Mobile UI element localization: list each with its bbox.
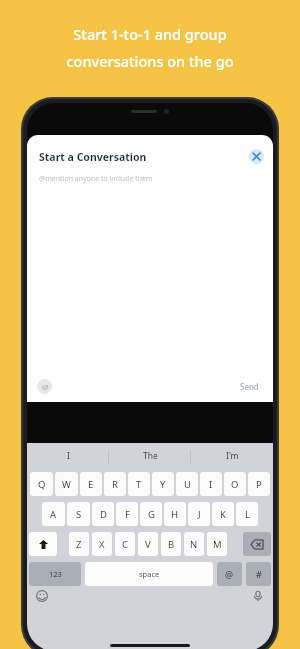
button[interactable]: T [128,472,150,496]
button[interactable]: Emoji [36,590,48,602]
button[interactable]: I [200,472,222,496]
button[interactable]: Shift [29,532,57,556]
button[interactable]: V [138,532,158,556]
staticText: T [136,478,142,491]
button[interactable]: M [207,532,227,556]
button[interactable]: Y [152,472,174,496]
button[interactable]: Q [30,472,53,496]
staticText: G [148,508,155,521]
button[interactable]: Close [249,149,264,164]
staticText: Z [76,538,82,551]
staticText: I'm [226,450,239,462]
button[interactable]: A [42,502,65,526]
button[interactable]: Send [238,379,261,394]
button[interactable]: The [109,443,191,469]
staticText: I [209,478,213,491]
button[interactable]: L [236,502,258,526]
button[interactable]: Z [69,532,89,556]
staticText: L [245,508,250,521]
button[interactable]: E [80,472,102,496]
button[interactable]: B [161,532,181,556]
button[interactable]: H [164,502,186,526]
staticText: # [256,568,262,580]
button[interactable]: I'm [191,443,273,469]
button[interactable]: K [212,502,234,526]
staticText: space [139,569,160,579]
button[interactable]: O [224,472,246,496]
button[interactable]: I [27,443,109,469]
button[interactable]: G [140,502,162,526]
staticText: W [62,478,71,491]
staticText: conversations on the go [66,51,234,71]
staticText: D [100,508,107,521]
staticText: Send [240,381,259,392]
button[interactable]: Attach file [37,379,52,394]
staticText: A [50,508,57,521]
button[interactable]: Dictation [252,590,264,602]
staticText: I [67,450,70,462]
button[interactable]: W [55,472,78,496]
button[interactable]: @ [217,562,242,586]
staticText: N [190,538,198,551]
button[interactable]: S [67,502,90,526]
staticText: M [213,538,222,551]
button[interactable]: 123 [29,562,81,586]
staticText: H [171,508,179,521]
staticText: Q [38,478,46,491]
button[interactable]: R [104,472,126,496]
staticText: B [168,538,175,551]
button[interactable]: D [92,502,114,526]
staticText: 123 [49,569,62,579]
staticText: @ [225,568,234,580]
button[interactable]: X [92,532,112,556]
staticText: Start a Conversation [39,150,147,164]
button[interactable]: F [116,502,138,526]
button[interactable]: C [115,532,135,556]
button[interactable]: Backspace [243,532,271,556]
staticText: Start 1-to-1 and group [73,24,227,44]
staticText: R [112,478,118,491]
staticText: K [220,508,226,521]
button[interactable]: N [184,532,204,556]
button[interactable]: # [246,562,271,586]
staticText: Y [160,478,166,491]
button[interactable]: space [85,562,213,586]
staticText: O [231,478,239,491]
button[interactable]: J [188,502,210,526]
staticText: P [256,478,262,491]
staticText: @mention anyone to include them [39,174,153,184]
staticText: S [76,508,82,521]
staticText: The [143,450,158,462]
staticText: E [88,478,94,491]
staticText: C [122,538,129,551]
staticText: X [99,538,105,551]
staticText: F [125,508,130,521]
button[interactable]: U [176,472,198,496]
staticText: V [145,538,151,551]
staticText: J [198,508,201,521]
staticText: U [184,478,191,491]
button[interactable]: P [248,472,270,496]
